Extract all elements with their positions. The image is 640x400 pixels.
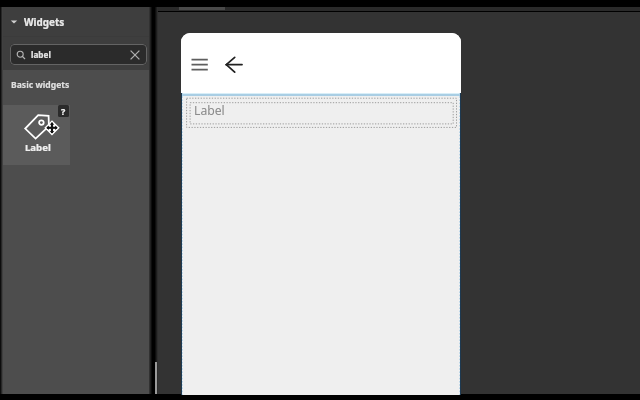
staticText: ? bbox=[61, 105, 66, 117]
button[interactable]: Help bbox=[3, 105, 70, 165]
staticText: Label bbox=[194, 102, 225, 119]
staticText: Widgets bbox=[24, 15, 65, 28]
button[interactable]: Back bbox=[221, 49, 249, 77]
staticText: Label bbox=[25, 141, 51, 154]
button[interactable]: label bbox=[10, 44, 147, 65]
button[interactable]: Clear search bbox=[126, 46, 144, 64]
button[interactable]: Menu bbox=[186, 49, 214, 77]
button[interactable]: Widgets bbox=[0, 7, 149, 36]
staticText: Basic widgets bbox=[11, 79, 70, 91]
staticText: label bbox=[31, 49, 51, 60]
button[interactable]: Help bbox=[58, 105, 69, 117]
